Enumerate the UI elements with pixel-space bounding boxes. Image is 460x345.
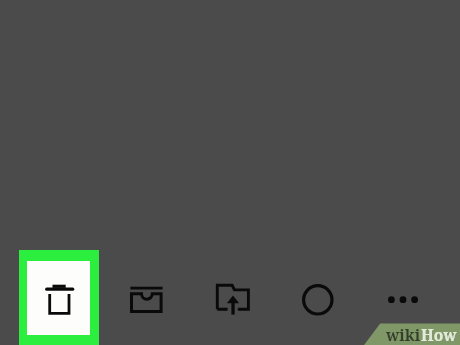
staticText: How xyxy=(421,324,457,345)
staticText: wiki xyxy=(386,324,421,345)
button[interactable]: Mark unread xyxy=(296,280,340,320)
button[interactable]: Move to folder xyxy=(211,280,255,320)
button[interactable]: Delete xyxy=(19,250,99,345)
button[interactable]: Archive xyxy=(123,280,169,320)
button[interactable]: More options xyxy=(382,285,424,315)
